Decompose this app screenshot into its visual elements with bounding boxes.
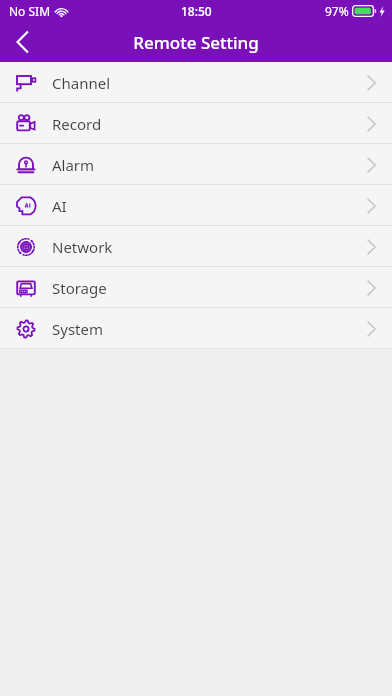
staticText: Remote Setting xyxy=(0,31,392,54)
staticText: Record xyxy=(52,114,102,134)
staticText: Alarm xyxy=(52,155,95,175)
button[interactable]: Back xyxy=(0,22,44,62)
button[interactable]: Channel xyxy=(0,62,392,103)
staticText: Storage xyxy=(52,278,107,298)
staticText: Channel xyxy=(52,73,111,93)
button[interactable]: AI xyxy=(0,185,392,226)
staticText: 18:50 xyxy=(181,3,212,19)
staticText: AI xyxy=(52,196,67,216)
button[interactable]: Record xyxy=(0,103,392,144)
staticText: Network xyxy=(52,237,113,257)
button[interactable]: Alarm xyxy=(0,144,392,185)
button[interactable]: System xyxy=(0,308,392,349)
staticText: No SIM xyxy=(9,3,51,19)
button[interactable]: Storage xyxy=(0,267,392,308)
button[interactable]: Network xyxy=(0,226,392,267)
staticText: System xyxy=(52,319,103,339)
staticText: 97% xyxy=(325,3,349,19)
